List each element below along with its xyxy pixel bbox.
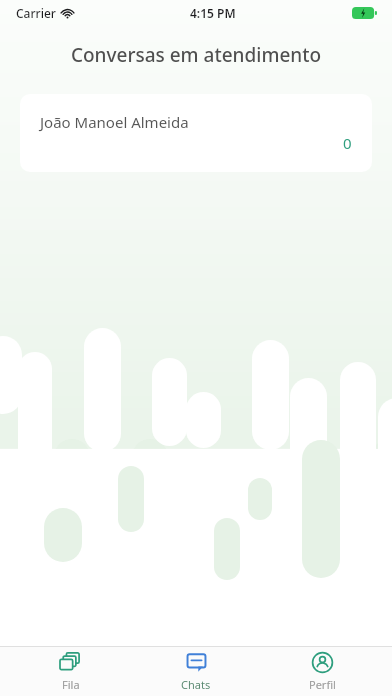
staticText: Conversas em atendimento	[0, 42, 392, 68]
staticText: Fila	[62, 677, 80, 692]
button[interactable]: Fila	[16, 651, 126, 692]
staticText: Perfil	[309, 677, 336, 692]
button[interactable]: Chats	[141, 651, 251, 692]
staticText: Chats	[181, 677, 211, 692]
button[interactable]: João Manoel Almeida	[20, 94, 372, 172]
button[interactable]: Perfil	[267, 651, 377, 692]
staticText: 4:15 PM	[190, 5, 236, 21]
staticText: 0	[343, 133, 352, 153]
staticText: Carrier	[16, 5, 56, 21]
staticText: João Manoel Almeida	[40, 112, 189, 132]
